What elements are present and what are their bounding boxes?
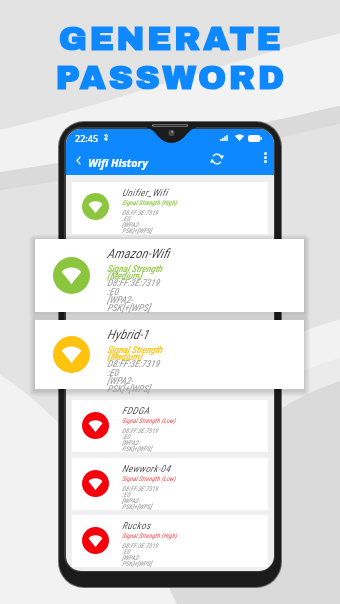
staticText: Hybrid-1 <box>107 327 149 342</box>
button[interactable]: More options <box>256 148 274 166</box>
staticText: PASSWORD <box>1 59 340 96</box>
staticText: Amazon-Wifi <box>107 246 170 261</box>
staticText: 22:45 <box>75 132 99 144</box>
staticText: D8:FF:3E:7319 :E0 [WPA2- PSK]+[WPS] <box>122 209 158 234</box>
staticText: GENERATE <box>1 20 340 57</box>
button[interactable]: Hybrid-1 <box>35 320 304 389</box>
button[interactable]: FDDGA <box>72 400 268 452</box>
button[interactable]: Ruckos <box>72 515 268 567</box>
staticText: Signal Strength (High) <box>122 532 177 540</box>
staticText: Signal Strength (Low) <box>122 475 176 483</box>
button[interactable]: Unifier_Wifi <box>72 182 268 234</box>
staticText: Ruckos <box>122 520 151 531</box>
staticText: FDDGA <box>122 405 150 416</box>
staticText: D8:FF:3E:7319 :E0 [WPA2- PSK]+[WPS] <box>107 277 160 313</box>
button[interactable]: Newwork-04 <box>72 458 268 510</box>
staticText: D8:FF:3E:7319 :E0 [WPA2- PSK]+[WPS] <box>122 427 158 452</box>
staticText: Signal Strength (High) <box>122 199 177 207</box>
staticText: Signal Strength (Medium) <box>107 344 163 362</box>
staticText: Wifi History <box>88 155 148 170</box>
staticText: Signal Strength (Medium) <box>107 263 163 281</box>
staticText: D8:FF:3E:7319 :E0 [WPA2- PSK]+[WPS] <box>107 358 160 394</box>
button[interactable]: Amazon-Wifi <box>35 239 304 312</box>
button[interactable]: Back <box>70 152 86 168</box>
staticText: Signal Strength (Low) <box>122 417 176 425</box>
staticText: Unifier_Wifi <box>122 187 168 198</box>
staticText: Newwork-04 <box>122 463 171 474</box>
button[interactable]: Refresh <box>206 148 228 170</box>
staticText: D8:FF:3E:7319 :E0 [WPA2- PSK]+[WPS] <box>122 542 158 567</box>
staticText: D8:FF:3E:7319 :E0 [WPA2- PSK]+[WPS] <box>122 485 158 510</box>
